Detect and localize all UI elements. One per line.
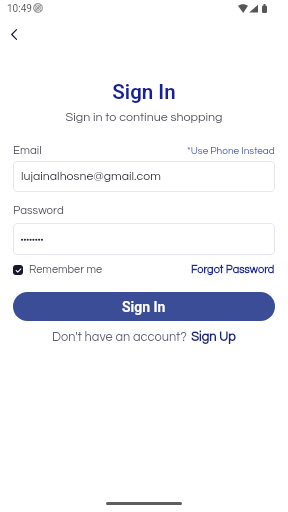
staticText: 10:49	[7, 3, 32, 15]
button[interactable]: *Use Phone Instead	[187, 146, 275, 156]
button[interactable]: Forgot Password	[191, 264, 275, 275]
button[interactable]: Sign Up	[191, 331, 236, 344]
staticText: Password	[13, 205, 64, 217]
button[interactable]: Remember me	[13, 264, 103, 275]
button[interactable]	[13, 223, 275, 255]
button[interactable]: lujainalhosne@gmail.com	[13, 161, 275, 192]
staticText: Sign In	[122, 299, 166, 315]
staticText: Don't have an account?	[52, 331, 187, 344]
staticText: Sign In	[0, 80, 288, 104]
button[interactable]: Sign In	[13, 292, 275, 321]
staticText: lujainalhosne@gmail.com	[21, 170, 161, 183]
staticText: Sign in to continue shopping	[0, 111, 288, 124]
staticText: Remember me	[29, 264, 103, 275]
staticText: Email	[13, 145, 42, 157]
button[interactable]: Back	[2, 22, 26, 46]
